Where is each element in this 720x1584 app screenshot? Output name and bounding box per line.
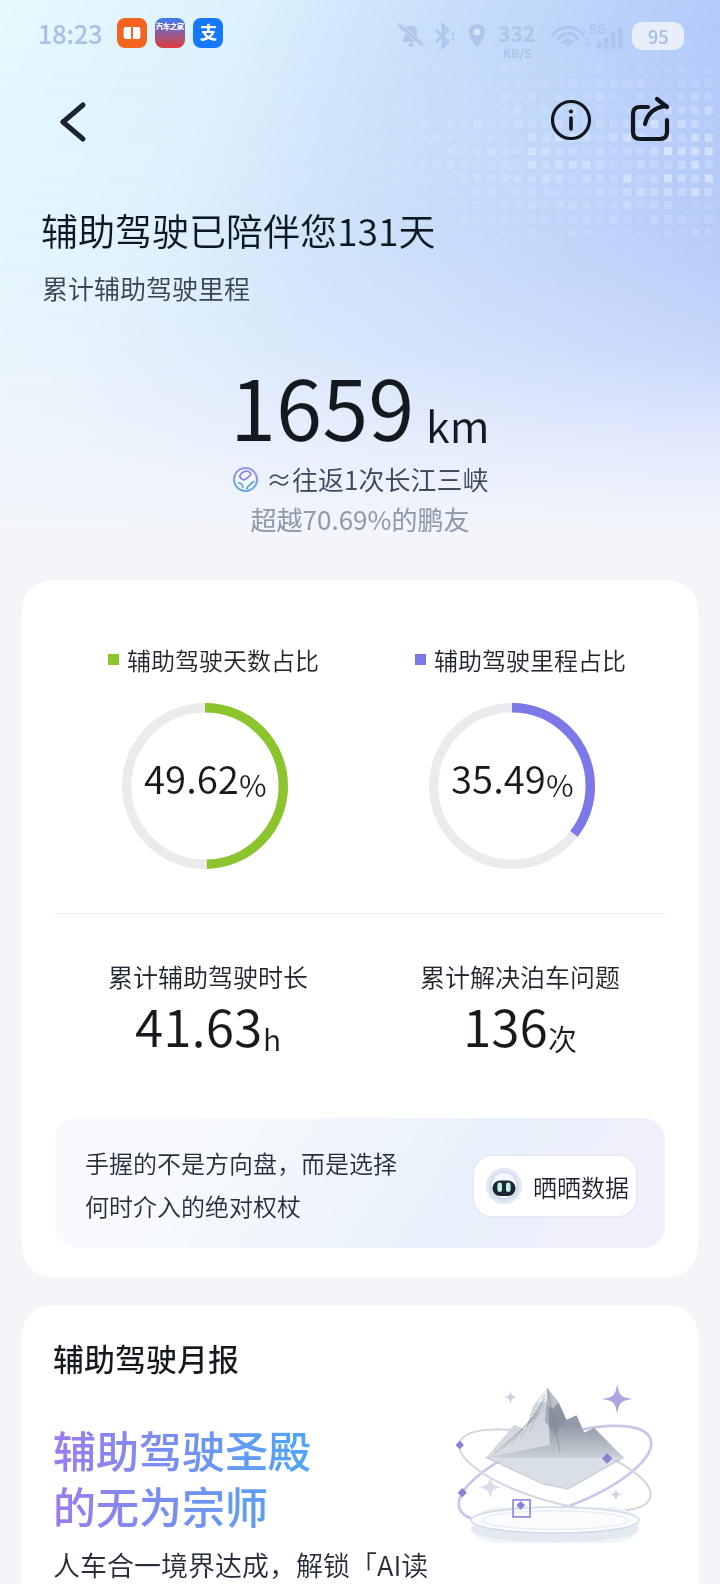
staticText: 累计辅助驾驶时长 xyxy=(108,958,309,994)
staticText: 5G xyxy=(589,19,606,38)
staticText: 晒晒数据 xyxy=(533,1169,629,1204)
staticText: 35.49 xyxy=(451,750,546,805)
staticText: 次 xyxy=(548,1017,578,1059)
staticText: ≈往返1次长江三峡 xyxy=(266,460,489,498)
staticText: 1659 xyxy=(230,345,415,465)
staticText: 辅助驾驶圣殿 xyxy=(53,1418,311,1480)
button[interactable]: 辅助驾驶月报 xyxy=(22,1305,698,1584)
staticText: 累计解决泊车问题 xyxy=(420,958,621,994)
staticText: 累计辅助驾驶里程 xyxy=(42,269,251,307)
staticText: 18:23 xyxy=(38,15,103,51)
staticText: km xyxy=(426,393,490,455)
button[interactable]: 晒晒数据 xyxy=(472,1154,638,1218)
staticText: 超越70.69%的鹏友 xyxy=(0,500,720,538)
staticText: % xyxy=(546,762,574,805)
staticText: 手握的不是方向盘，而是选择 xyxy=(85,1145,397,1180)
button[interactable]: Info xyxy=(538,87,604,153)
staticText: 支 xyxy=(200,19,217,44)
staticText: h xyxy=(263,1016,282,1059)
staticText: 人车合一境界达成，解锁「AI读 xyxy=(53,1545,429,1584)
staticText: 何时介入的绝对权杖 xyxy=(85,1188,301,1223)
staticText: 辅助驾驶天数占比 xyxy=(127,642,319,677)
staticText: 41.63 xyxy=(135,988,263,1062)
button[interactable]: Share xyxy=(617,90,683,156)
staticText: 332 xyxy=(498,18,536,48)
staticText: 136 xyxy=(463,988,548,1062)
staticText: 95 xyxy=(648,23,669,49)
staticText: KB/S xyxy=(503,44,532,61)
staticText: 辅助驾驶月报 xyxy=(53,1335,239,1380)
staticText: 辅助驾驶里程占比 xyxy=(434,642,626,677)
staticText: 49.62 xyxy=(144,750,239,805)
staticText: 的无为宗师 xyxy=(53,1474,268,1536)
staticText: 汽车之家 xyxy=(156,21,184,31)
staticText: % xyxy=(239,762,267,805)
staticText: 辅助驾驶已陪伴您131天 xyxy=(41,203,436,257)
button[interactable]: Back xyxy=(38,89,104,155)
